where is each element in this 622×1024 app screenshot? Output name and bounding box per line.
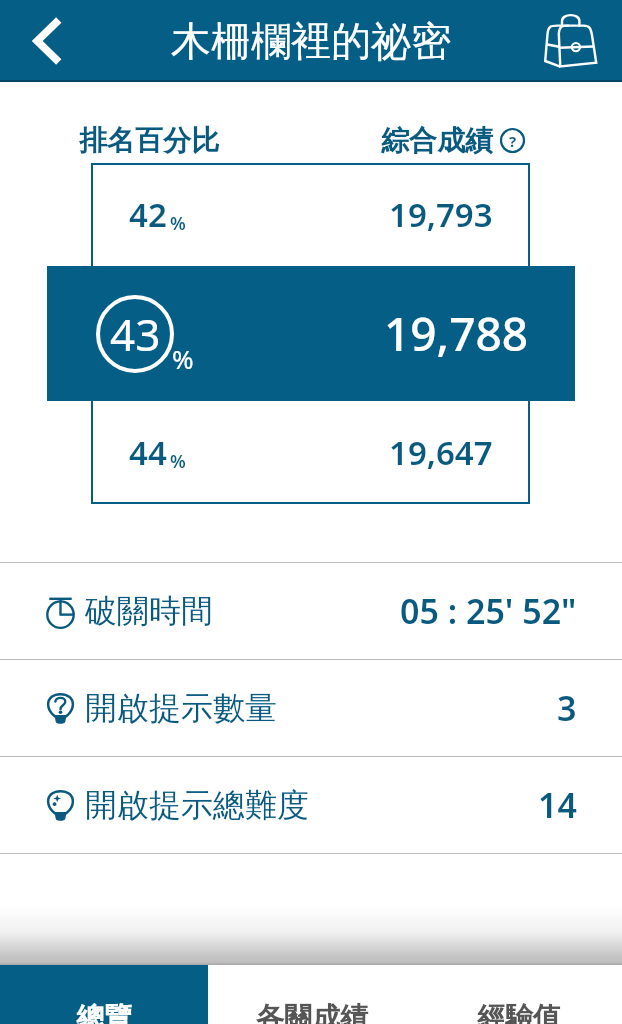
button[interactable]: 各關成績: [208, 965, 415, 1024]
staticText: 總覽: [76, 1000, 132, 1024]
button[interactable]: 43: [47, 266, 575, 401]
button[interactable]: Back: [21, 14, 75, 68]
staticText: 19,788: [384, 302, 529, 365]
staticText: 綜合成績: [381, 123, 493, 158]
staticText: 19,793: [389, 192, 493, 237]
button[interactable]: 破關時間: [0, 563, 622, 659]
staticText: 破關時間: [85, 591, 213, 631]
button[interactable]: 總覽: [0, 965, 208, 1024]
staticText: 3: [557, 685, 577, 731]
button[interactable]: 經驗值: [415, 965, 622, 1024]
staticText: 開啟提示總難度: [85, 785, 309, 825]
staticText: 各關成績: [256, 1000, 368, 1024]
staticText: 43: [110, 304, 161, 364]
button[interactable]: 開啟提示總難度: [0, 757, 622, 853]
staticText: %: [170, 211, 186, 236]
staticText: %: [170, 449, 186, 474]
staticText: 19,647: [389, 430, 493, 475]
staticText: 05 : 25' 52": [400, 588, 577, 634]
staticText: 42: [129, 192, 167, 237]
button[interactable]: Bag: [542, 12, 600, 70]
staticText: 木柵欄裡的祕密: [171, 16, 451, 66]
button[interactable]: 開啟提示數量: [0, 660, 622, 756]
staticText: 44: [129, 430, 167, 475]
staticText: 開啟提示數量: [85, 688, 277, 728]
staticText: 經驗值: [477, 1000, 561, 1024]
staticText: %: [172, 341, 194, 376]
staticText: 排名百分比: [79, 123, 219, 158]
staticText: 14: [538, 782, 577, 828]
staticText: ?: [509, 131, 517, 151]
